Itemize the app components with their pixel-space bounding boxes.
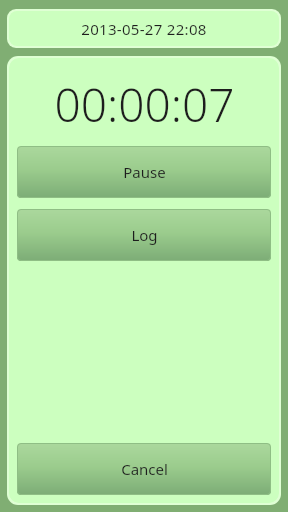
button[interactable]: Log bbox=[17, 209, 271, 261]
staticText: 00:00:07 bbox=[54, 73, 235, 136]
button[interactable]: 2013-05-27 22:08 bbox=[9, 11, 279, 46]
staticText: Pause bbox=[123, 162, 166, 182]
staticText: 2013-05-27 22:08 bbox=[81, 19, 207, 39]
staticText: Cancel bbox=[121, 459, 168, 479]
button[interactable]: Cancel bbox=[17, 443, 271, 495]
button[interactable]: Pause bbox=[17, 146, 271, 198]
staticText: Log bbox=[131, 225, 158, 245]
